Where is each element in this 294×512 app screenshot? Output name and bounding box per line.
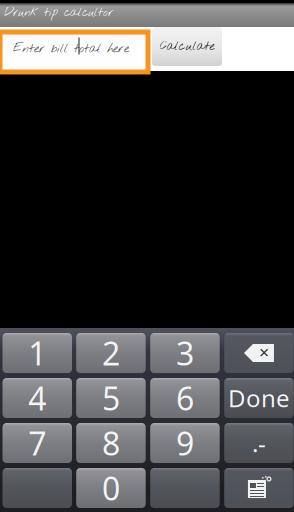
button[interactable]: 0 bbox=[76, 468, 146, 508]
staticText: 0 bbox=[102, 467, 120, 509]
staticText: 2 bbox=[102, 332, 120, 374]
button[interactable]: 3 bbox=[150, 333, 220, 373]
button[interactable]: 1 bbox=[2, 333, 72, 373]
button[interactable]: 8 bbox=[76, 423, 146, 463]
staticText: Done bbox=[228, 382, 290, 414]
staticText: Calculate bbox=[159, 38, 214, 54]
button[interactable]: Period and dash bbox=[224, 423, 294, 463]
button[interactable]: Blank bbox=[2, 468, 72, 508]
staticText: 7 bbox=[28, 422, 46, 464]
button[interactable]: 2 bbox=[76, 333, 146, 373]
button[interactable]: 4 bbox=[2, 378, 72, 418]
staticText: 8 bbox=[102, 422, 120, 464]
button[interactable]: 6 bbox=[150, 378, 220, 418]
staticText: Enter bill total here bbox=[13, 41, 129, 57]
staticText: Drunk tip calcultor bbox=[4, 5, 113, 21]
button[interactable]: Switch input method bbox=[224, 468, 294, 508]
button[interactable]: Calculate bbox=[152, 27, 222, 66]
staticText: 3 bbox=[176, 332, 194, 374]
button[interactable]: 7 bbox=[2, 423, 72, 463]
button[interactable]: 5 bbox=[76, 378, 146, 418]
button[interactable]: Delete bbox=[224, 333, 294, 373]
staticText: 4 bbox=[28, 377, 46, 419]
staticText: ✕ bbox=[258, 345, 269, 360]
button[interactable]: Done bbox=[224, 378, 294, 418]
button[interactable]: Blank bbox=[150, 468, 220, 508]
button[interactable]: 9 bbox=[150, 423, 220, 463]
staticText: 5 bbox=[102, 377, 120, 419]
staticText: .- bbox=[252, 427, 266, 459]
staticText: 6 bbox=[176, 377, 194, 419]
staticText: 9 bbox=[176, 422, 194, 464]
staticText: 1 bbox=[28, 332, 46, 374]
